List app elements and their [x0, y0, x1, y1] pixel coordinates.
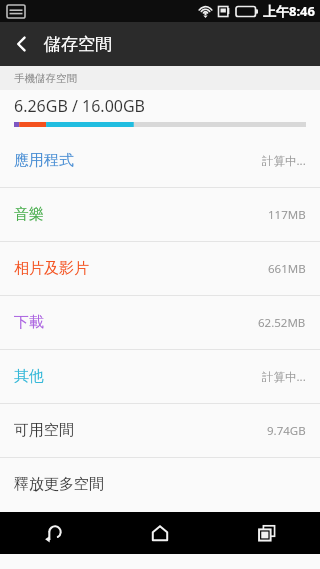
staticText: 音樂	[14, 205, 44, 224]
button[interactable]: 釋放更多空間	[0, 458, 320, 511]
staticText: 計算中...	[262, 369, 306, 385]
button[interactable]: 下載	[0, 296, 320, 349]
button[interactable]: Back	[0, 22, 44, 66]
staticText: 手機儲存空間	[14, 72, 77, 85]
staticText: 661MB	[268, 261, 306, 277]
button[interactable]: Recent apps	[213, 512, 320, 554]
button[interactable]: 應用程式	[0, 134, 320, 187]
staticText: 釋放更多空間	[14, 475, 104, 494]
staticText: 可用空間	[14, 421, 74, 440]
staticText: 計算中...	[262, 153, 306, 169]
button[interactable]: 可用空間	[0, 404, 320, 457]
staticText: 下載	[14, 313, 44, 332]
staticText: 其他	[14, 367, 44, 386]
button[interactable]: 相片及影片	[0, 242, 320, 295]
button[interactable]: 音樂	[0, 188, 320, 241]
staticText: 6.26GB / 16.00GB	[14, 95, 146, 117]
staticText: 應用程式	[14, 151, 74, 170]
staticText: 117MB	[268, 207, 306, 223]
staticText: 儲存空間	[44, 34, 112, 55]
button[interactable]: Back	[0, 512, 106, 554]
staticText: 9.74GB	[267, 423, 306, 439]
staticText: 62.52MB	[258, 315, 306, 331]
staticText: 上午8:46	[263, 2, 315, 20]
staticText: 相片及影片	[14, 259, 89, 278]
button[interactable]: 其他	[0, 350, 320, 403]
button[interactable]: Home	[106, 512, 213, 554]
